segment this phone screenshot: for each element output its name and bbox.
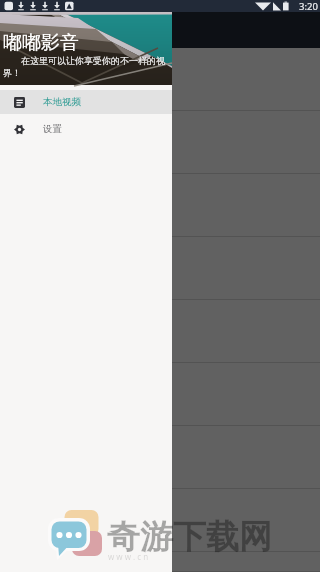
button[interactable]: [0, 0, 320, 572]
staticText: 奇游下载网: [107, 516, 272, 558]
button[interactable]: [0, 174, 320, 237]
button[interactable]: [0, 300, 320, 363]
staticText: 在这里可以让你享受你的不一样的视界！: [3, 54, 170, 79]
button[interactable]: [0, 48, 320, 111]
button[interactable]: [0, 111, 320, 174]
button[interactable]: 设置: [0, 117, 172, 141]
staticText: 嘟嘟影音: [3, 31, 79, 55]
button[interactable]: [0, 363, 320, 426]
button[interactable]: [0, 426, 320, 489]
button[interactable]: [0, 552, 320, 572]
staticText: 设置: [43, 123, 62, 135]
button[interactable]: [0, 237, 320, 300]
staticText: 本地视频: [43, 96, 81, 108]
staticText: 3:20: [299, 0, 318, 12]
button[interactable]: 本地视频: [0, 90, 172, 114]
staticText: w w w . c n: [108, 551, 149, 562]
button[interactable]: [0, 489, 320, 552]
